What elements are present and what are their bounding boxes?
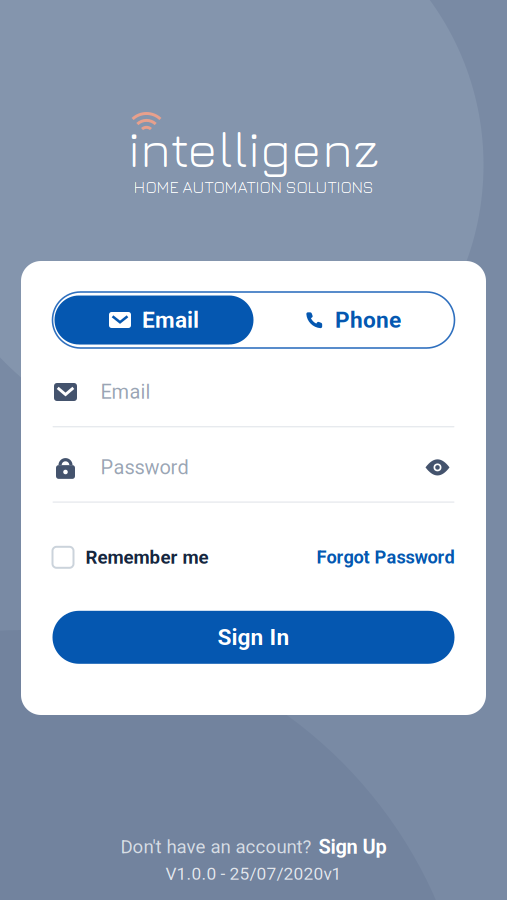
button[interactable]: Phone [253, 295, 452, 344]
staticText: Don't have an account? [120, 836, 311, 858]
staticText: Phone [335, 307, 401, 333]
staticText: V1.0.0 - 25/07/2020v1 [165, 864, 341, 884]
button[interactable]: Show password [420, 450, 454, 484]
staticText: HOME AUTOMATION SOLUTIONS [133, 177, 373, 197]
staticText: Sign In [217, 624, 289, 651]
button[interactable]: Remember me [52, 535, 208, 580]
button[interactable]: Don't have an account? [120, 835, 386, 859]
staticText: Remember me [85, 546, 208, 568]
staticText: Sign Up [318, 835, 386, 859]
button[interactable]: Forgot Password [316, 535, 454, 580]
staticText: intelligenz [128, 118, 379, 178]
button[interactable]: Email [54, 295, 253, 344]
staticText: Email [142, 307, 199, 333]
button[interactable]: Sign In [52, 611, 454, 664]
staticText: Password [100, 456, 188, 479]
staticText: Forgot Password [316, 547, 454, 568]
staticText: Email [100, 380, 150, 404]
